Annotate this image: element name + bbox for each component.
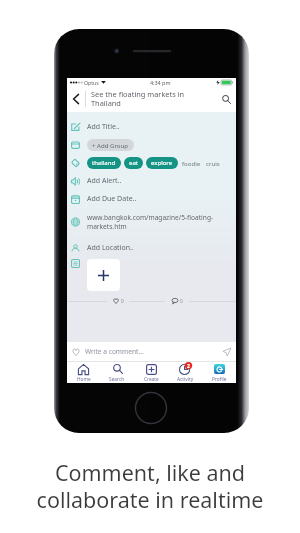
button[interactable]: thailand xyxy=(67,154,236,172)
staticText: See the floating markets in Thailand xyxy=(91,89,191,109)
staticText: Add Location.. xyxy=(87,243,134,253)
staticText: www.bangkok.com/magazine/5-floating-mark… xyxy=(87,213,219,231)
button[interactable]: Write a comment... xyxy=(67,342,236,361)
staticText: thailand xyxy=(92,159,116,167)
staticText: Profile xyxy=(212,376,227,383)
button[interactable]: + Add Group xyxy=(67,136,236,154)
staticText: eat xyxy=(129,159,138,167)
staticText: 2 xyxy=(187,363,190,370)
button[interactable]: 0 xyxy=(165,296,189,306)
button[interactable]: eat xyxy=(124,157,143,169)
button[interactable]: Search xyxy=(100,362,134,383)
staticText: Optus xyxy=(84,79,99,86)
button[interactable]: thailand xyxy=(87,157,121,169)
button[interactable]: 0 xyxy=(107,296,129,306)
staticText: foodie xyxy=(182,159,201,167)
button[interactable]: Add Location.. xyxy=(67,236,236,259)
button[interactable]: 2 xyxy=(168,362,202,383)
staticText: Write a comment... xyxy=(85,347,144,356)
staticText: 4:34 pm xyxy=(150,79,171,86)
staticText: + Add Group xyxy=(92,141,129,149)
button[interactable]: Back xyxy=(67,86,85,112)
staticText: Activity xyxy=(177,376,194,383)
button[interactable]: www.bangkok.com/magazine/5-floating-mark… xyxy=(67,208,236,236)
staticText: Search xyxy=(109,376,125,383)
staticText: 0 xyxy=(121,298,124,304)
button[interactable]: Home xyxy=(67,362,100,383)
staticText: explore xyxy=(151,159,173,167)
button[interactable]: + Add Group xyxy=(87,139,134,151)
staticText: Home xyxy=(77,376,91,383)
staticText: cruis xyxy=(206,159,220,167)
staticText: Comment, like and collaborate in realtim… xyxy=(0,458,300,514)
staticText: 0 xyxy=(180,298,183,304)
button[interactable]: Add Due Date.. xyxy=(67,190,236,208)
button[interactable]: Search xyxy=(216,86,236,112)
button[interactable]: Add attachment xyxy=(87,259,120,291)
staticText: Add Due Date.. xyxy=(87,194,137,204)
button[interactable]: Add Alert.. xyxy=(67,172,236,190)
staticText: Add Title.. xyxy=(87,122,120,132)
button[interactable]: Add Title.. xyxy=(67,118,236,136)
button[interactable]: Create xyxy=(134,362,168,383)
button[interactable]: Profile xyxy=(202,362,236,383)
button[interactable]: explore xyxy=(146,157,178,169)
staticText: Create xyxy=(144,376,159,383)
staticText: Add Alert.. xyxy=(87,176,122,186)
